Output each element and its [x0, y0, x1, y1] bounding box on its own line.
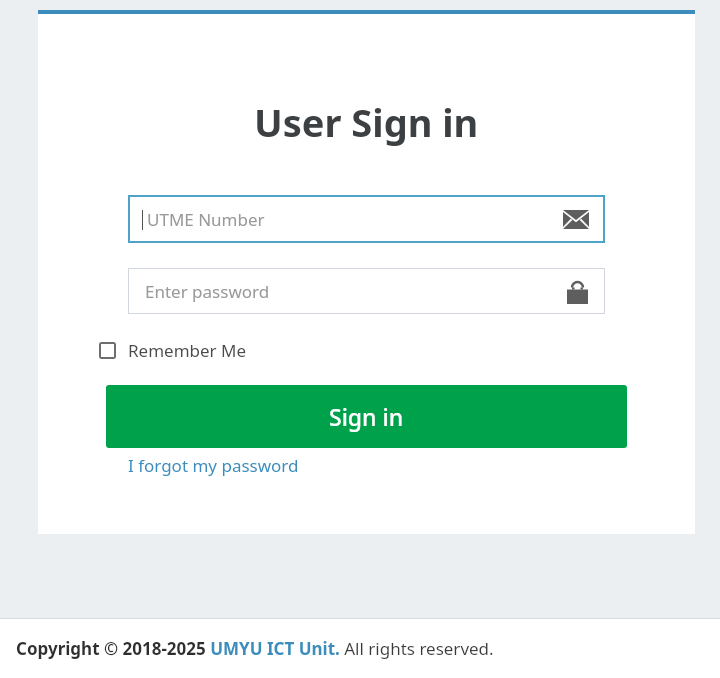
staticText: I forgot my password [128, 454, 299, 477]
button[interactable]: I forgot my password [128, 454, 299, 477]
staticText: Copyright © 2018-2025 UMYU ICT Unit. All… [16, 637, 494, 660]
button[interactable]: Enter password [128, 268, 605, 314]
staticText: Enter password [145, 280, 270, 303]
staticText: UTME Number [147, 208, 265, 231]
staticText: User Sign in [254, 96, 479, 148]
other: Email [563, 210, 589, 229]
button[interactable]: Sign in [106, 385, 627, 448]
button[interactable]: UTME Number [128, 195, 605, 243]
staticText: Sign in [329, 401, 404, 432]
staticText: Remember Me [128, 339, 247, 362]
other: Password [567, 279, 588, 304]
button[interactable]: Remember Me [99, 339, 247, 362]
